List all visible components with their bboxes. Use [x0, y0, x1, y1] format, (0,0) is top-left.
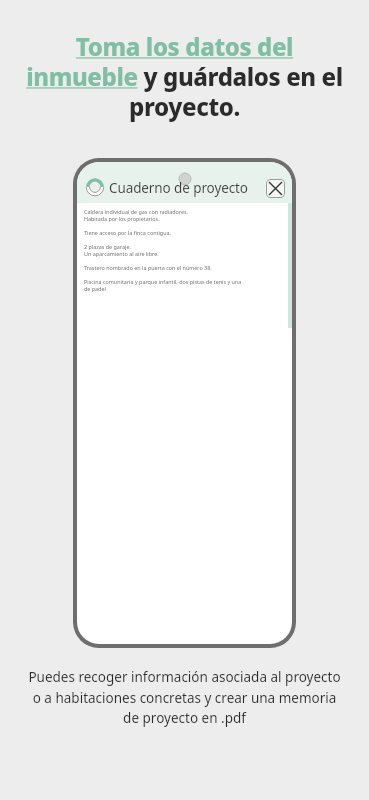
button[interactable]: Cerrar [266, 179, 285, 198]
staticText: Caldera individual de gas con radiadores… [84, 208, 189, 215]
staticText: Un aparcamiento al aire libre. [84, 250, 159, 257]
staticText: Trastero nombrado en la puerta con el nú… [84, 264, 212, 271]
staticText: 2 plazas de garaje. [84, 243, 131, 250]
staticText: Tiene acceso por la finca contigua. [84, 229, 171, 236]
staticText: de padel [84, 285, 106, 292]
staticText: Toma los datos del inmueble y guárdalos … [18, 30, 351, 123]
staticText: Puedes recoger información asociada al p… [24, 668, 345, 727]
staticText: Habitada por los propietarios. [84, 215, 160, 222]
other: Logo [84, 176, 106, 198]
staticText: Cuaderno de proyecto [109, 179, 248, 197]
staticText: Piscina comunitaria y parque infantil, d… [84, 278, 242, 285]
